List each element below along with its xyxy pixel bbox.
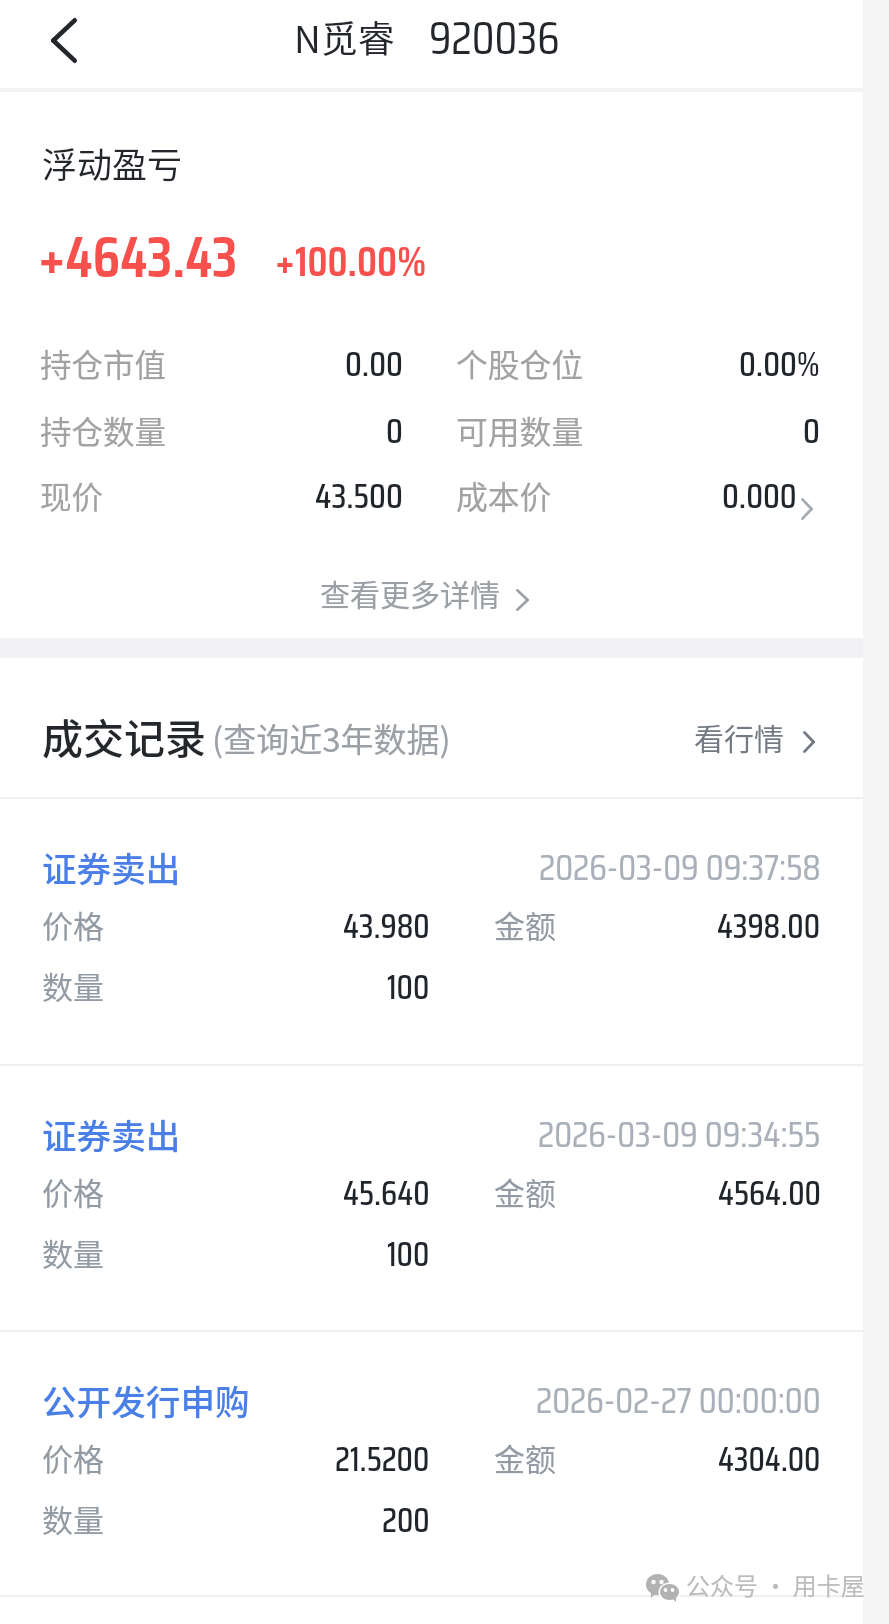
staticText: 4398.00 [717,899,821,953]
button[interactable]: 看行情 [694,708,815,764]
button[interactable]: 证券卖出 [0,1066,863,1331]
staticText: 2026-02-27 00:00:00 [536,1371,821,1429]
staticText: 200 [382,1493,430,1547]
staticText: 看行情 [694,715,784,758]
staticText: 0 [803,403,820,458]
staticText: 持仓数量 [40,407,167,453]
staticText: +100.00% [275,228,427,294]
staticText: 0.000 [722,468,797,523]
staticText: 4564.00 [718,1166,821,1220]
staticText: 2026-03-09 09:37:58 [539,838,821,896]
staticText: 金额 [494,1169,556,1214]
staticText: 数量 [42,963,104,1008]
staticText: 100 [387,960,430,1014]
button[interactable]: 查看更多详情 [0,568,856,616]
staticText: 金额 [494,902,556,947]
staticText: 持仓市值 [40,340,167,386]
staticText: 数量 [42,1496,104,1541]
staticText: 价格 [42,902,104,947]
staticText: 43.500 [315,468,403,523]
staticText: 数量 [42,1230,104,1275]
staticText: 金额 [494,1435,556,1480]
staticText: 价格 [42,1169,104,1214]
staticText: 0 [386,403,403,458]
staticText: 0.00 [345,336,403,391]
button[interactable]: Back [32,8,96,72]
staticText: 2026-03-09 09:34:55 [538,1105,821,1163]
staticText: 成交记录 [42,706,206,765]
staticText: 920036 [429,1,560,75]
staticText: 0.00% [739,336,820,391]
staticText: 公开发行申购 [42,1375,250,1425]
staticText: 查看更多详情 [320,571,500,614]
staticText: N觅睿 [294,10,395,64]
staticText: 21.5200 [335,1432,430,1486]
staticText: 成本价 [456,472,552,518]
staticText: 个股仓位 [456,340,584,386]
button[interactable]: 证券卖出 [0,799,863,1064]
button[interactable]: 公开发行申购 [0,1332,863,1597]
staticText: 现价 [40,472,104,518]
staticText: 100 [387,1227,430,1281]
staticText: 价格 [42,1435,104,1480]
staticText: 45.640 [343,1166,430,1220]
staticText: 证券卖出 [42,842,181,892]
staticText: 可用数量 [456,407,584,453]
staticText: 公众号 · 用卡屋 [686,1567,865,1602]
staticText: (查询近3年数据) [212,714,451,762]
staticText: 43.980 [343,899,430,953]
staticText: 证券卖出 [42,1109,181,1159]
staticText: 4304.00 [718,1432,821,1486]
staticText: +4643.43 [38,211,238,302]
staticText: 浮动盈亏 [42,137,183,188]
